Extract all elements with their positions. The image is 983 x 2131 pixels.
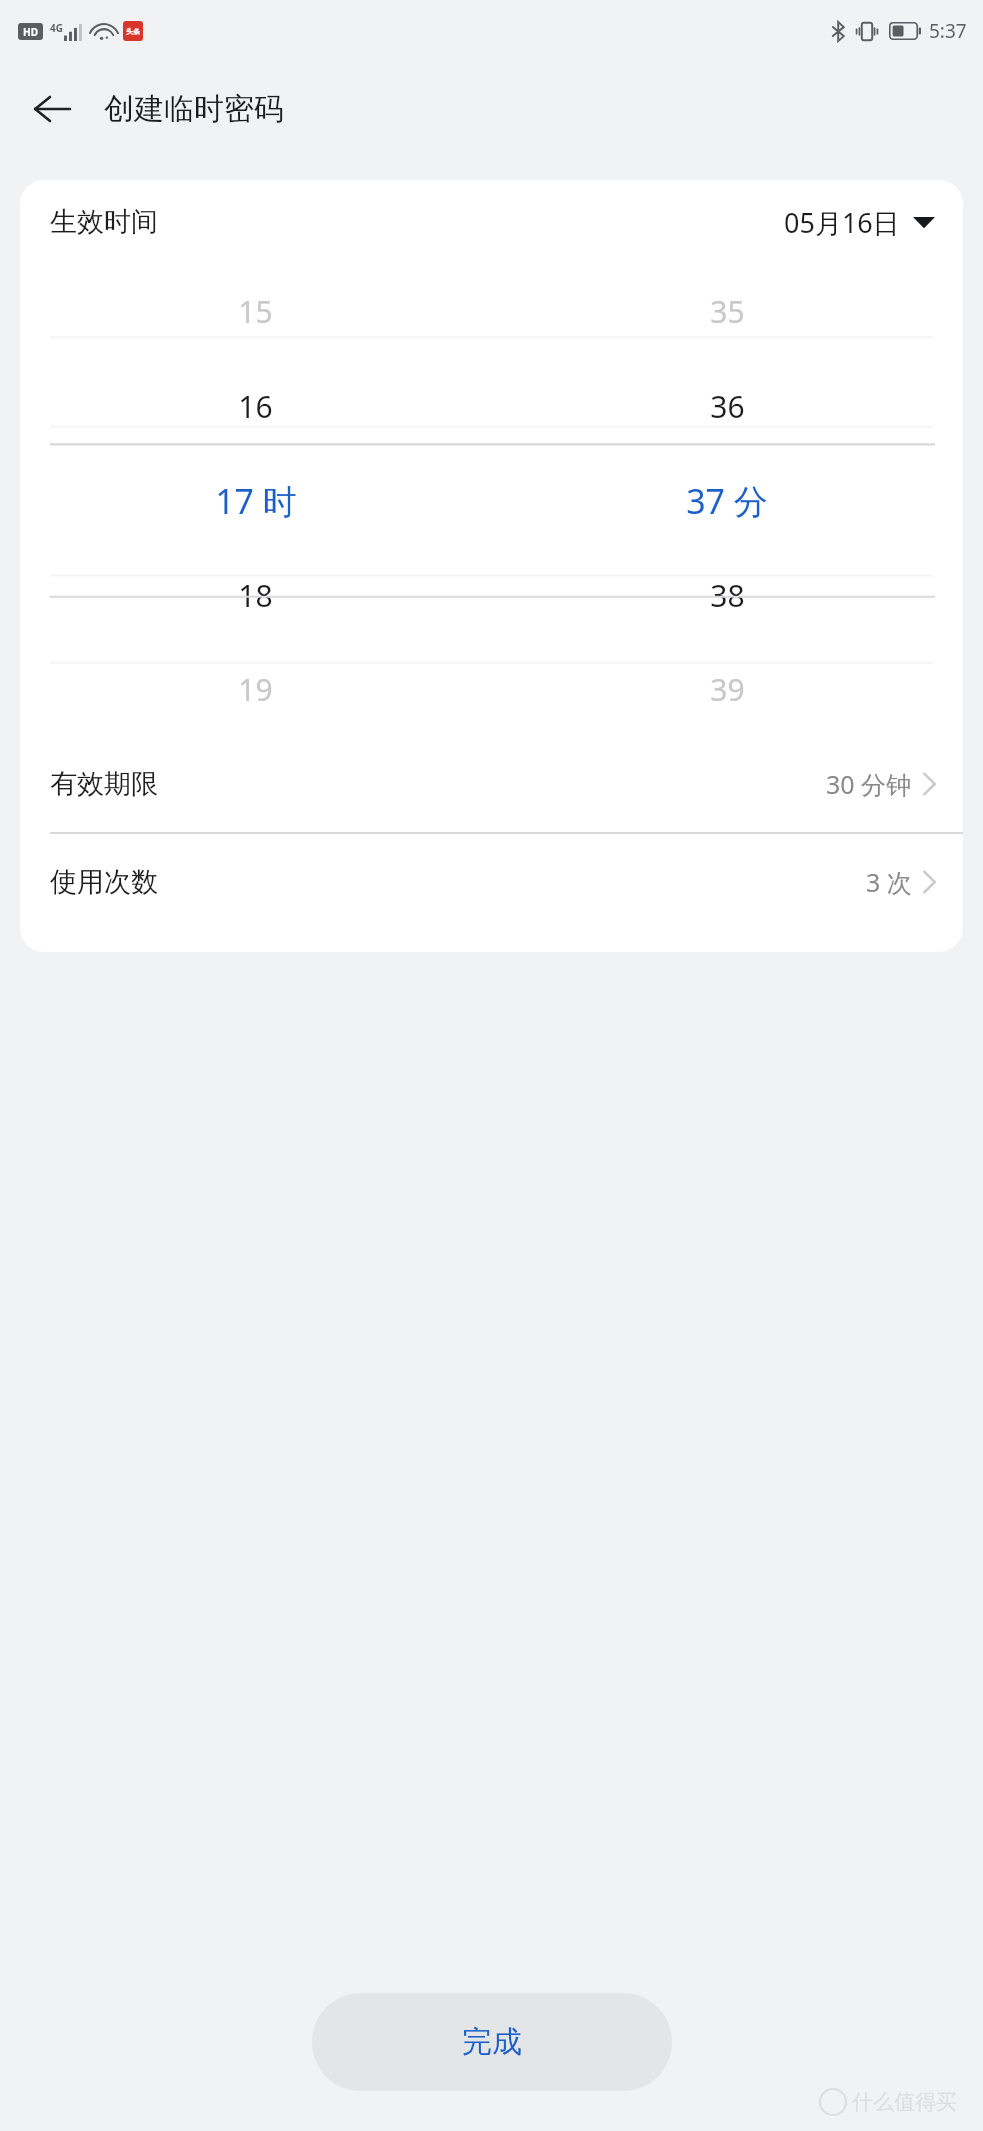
staticText: 30 分钟 xyxy=(826,767,912,801)
staticText: 完成 xyxy=(462,2023,522,2061)
button[interactable]: 有效期限 xyxy=(20,736,963,832)
staticText: 36 xyxy=(710,386,745,427)
button[interactable]: 返回 xyxy=(16,73,88,145)
staticText: 19 xyxy=(238,669,273,710)
button[interactable]: 35 xyxy=(491,264,963,736)
staticText: 17 时 xyxy=(215,478,297,524)
staticText: 05月16日 xyxy=(784,204,900,241)
staticText: 4G xyxy=(50,21,63,35)
button[interactable]: 使用次数 xyxy=(20,834,963,930)
staticText: 5:37 xyxy=(929,18,967,44)
staticText: 有效期限 xyxy=(50,767,158,801)
staticText: 什么值得买 xyxy=(852,2089,957,2115)
staticText: 使用次数 xyxy=(50,865,158,899)
staticText: 35 xyxy=(710,291,745,332)
staticText: HD xyxy=(23,25,38,39)
staticText: 头条 xyxy=(126,27,140,36)
button[interactable]: 15 xyxy=(20,264,491,736)
staticText: 39 xyxy=(710,669,745,710)
button[interactable]: 生效时间 xyxy=(20,180,963,264)
staticText: 生效时间 xyxy=(50,205,158,239)
staticText: 18 xyxy=(238,575,273,616)
staticText: 15 xyxy=(238,291,273,332)
staticText: 38 xyxy=(710,575,745,616)
staticText: 16 xyxy=(238,386,273,427)
button[interactable]: 完成 xyxy=(312,1993,672,2091)
staticText: 3 次 xyxy=(866,865,912,899)
staticText: 创建临时密码 xyxy=(104,90,284,128)
staticText: 37 分 xyxy=(686,478,768,524)
